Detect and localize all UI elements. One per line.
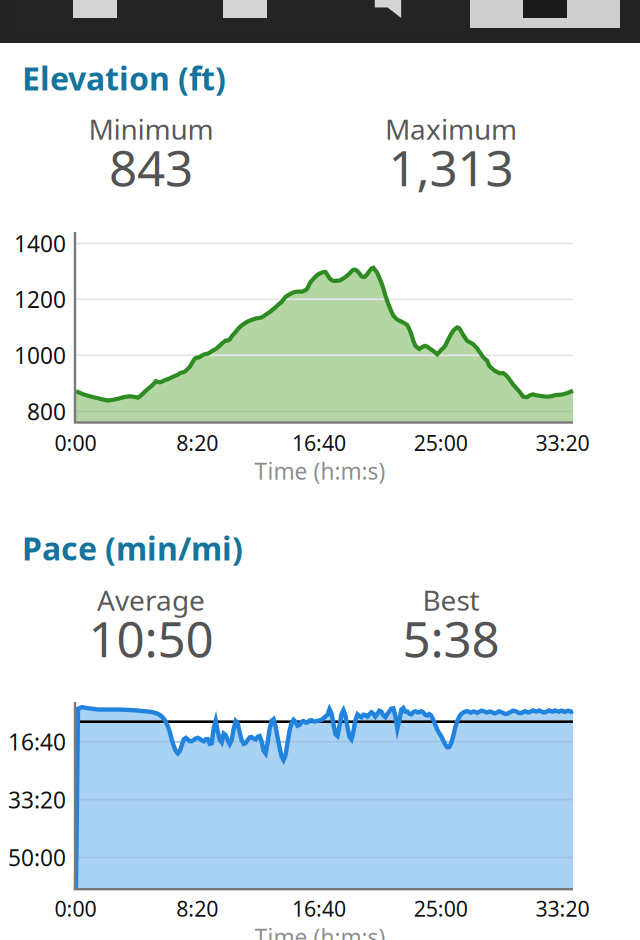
staticText: 8:20: [176, 894, 218, 923]
staticText: 33:20: [8, 784, 66, 815]
staticText: 0:00: [55, 429, 97, 457]
staticText: 0:00: [55, 894, 97, 923]
staticText: 1000: [14, 340, 66, 370]
staticText: 5:38: [402, 605, 499, 671]
staticText: 1200: [14, 284, 66, 314]
button[interactable]: Audio: [320, 0, 470, 28]
staticText: Minimum: [88, 110, 213, 148]
button[interactable]: Splits: [170, 0, 320, 28]
staticText: Best: [422, 581, 479, 619]
staticText: 8:20: [176, 429, 218, 457]
staticText: 1400: [14, 228, 66, 258]
button[interactable]: Map: [20, 0, 170, 28]
staticText: 33:20: [535, 429, 589, 457]
staticText: Average: [97, 581, 205, 619]
staticText: 25:00: [414, 429, 468, 457]
staticText: Elevation (ft): [22, 57, 226, 99]
staticText: Time (h:m:s): [254, 922, 385, 940]
staticText: Maximum: [385, 110, 517, 148]
staticText: 10:50: [88, 605, 213, 671]
staticText: Pace (min/mi): [22, 527, 243, 569]
staticText: 16:40: [292, 894, 346, 923]
staticText: 843: [109, 134, 193, 200]
staticText: Time (h:m:s): [254, 456, 385, 486]
button[interactable]: Charts: [470, 0, 620, 28]
staticText: 16:40: [292, 429, 346, 457]
staticText: 50:00: [8, 842, 66, 872]
staticText: 16:40: [8, 727, 66, 757]
staticText: 1,313: [388, 134, 513, 200]
staticText: 33:20: [535, 894, 589, 923]
staticText: 800: [27, 396, 66, 426]
staticText: 25:00: [414, 894, 468, 923]
